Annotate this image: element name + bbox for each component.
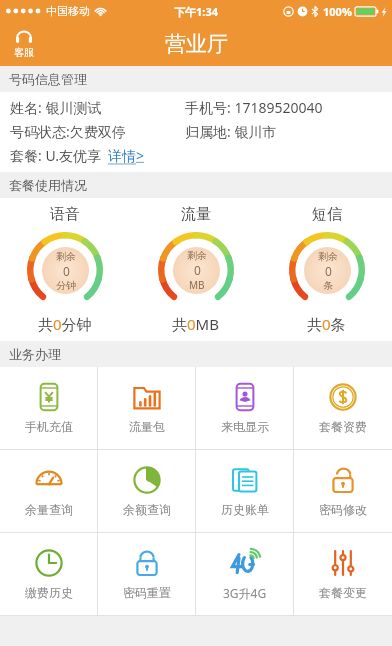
staticText: 详情> — [108, 146, 145, 165]
staticText: 短信 — [312, 205, 342, 224]
staticText: 客服 — [14, 46, 34, 59]
staticText: 套餐资费 — [319, 419, 367, 434]
staticText: 0 — [63, 263, 70, 279]
staticText: 归属地: 银川市 — [185, 122, 277, 141]
staticText: 条 — [323, 279, 333, 292]
staticText: 剩余 — [318, 250, 338, 263]
staticText: 号码信息管理 — [9, 71, 87, 87]
button[interactable]: 客服 — [10, 28, 38, 61]
staticText: 语音 — [50, 205, 80, 224]
staticText: 流量包 — [129, 419, 165, 434]
staticText: 业务办理 — [9, 346, 61, 362]
button[interactable]: 手机充值 — [0, 367, 98, 449]
staticText: 共0分钟 — [38, 314, 92, 334]
staticText: 100% — [323, 4, 352, 19]
staticText: 余量查询 — [25, 502, 73, 517]
staticText: 手机充值 — [25, 419, 73, 434]
staticText: 密码修改 — [319, 502, 367, 517]
staticText: 姓名: 银川测试 — [10, 98, 185, 117]
staticText: 缴费历史 — [25, 585, 73, 600]
button[interactable]: 历史账单 — [196, 450, 294, 532]
staticText: 0 — [194, 262, 201, 278]
staticText: 剩余 — [56, 250, 76, 263]
staticText: 共0MB — [172, 314, 219, 334]
button[interactable]: 余额查询 — [98, 450, 196, 532]
staticText: 余额查询 — [123, 502, 171, 517]
staticText: 来电显示 — [221, 419, 269, 434]
staticText: MB — [189, 278, 205, 292]
staticText: 手机号: 17189520040 — [185, 98, 323, 117]
button[interactable]: 详情> — [108, 146, 145, 165]
button[interactable]: 3G升4G — [196, 533, 294, 615]
staticText: 分钟 — [56, 279, 76, 292]
button[interactable]: 套餐变更 — [294, 533, 392, 615]
button[interactable]: 来电显示 — [196, 367, 294, 449]
staticText: 流量 — [181, 205, 211, 224]
staticText: 共0条 — [307, 314, 346, 334]
staticText: 历史账单 — [221, 502, 269, 517]
button[interactable]: 流量包 — [98, 367, 196, 449]
staticText: 3G升4G — [223, 585, 267, 601]
staticText: 下午1:34 — [174, 4, 218, 19]
staticText: 密码重置 — [123, 585, 171, 600]
button[interactable]: 密码修改 — [294, 450, 392, 532]
button[interactable]: 套餐资费 — [294, 367, 392, 449]
staticText: 套餐变更 — [319, 585, 367, 600]
staticText: 号码状态:欠费双停 — [10, 122, 185, 141]
button[interactable]: 缴费历史 — [0, 533, 98, 615]
staticText: 营业厅 — [165, 31, 228, 57]
button[interactable]: 密码重置 — [98, 533, 196, 615]
staticText: 中国移动 — [46, 4, 90, 18]
staticText: 套餐: U.友优享 — [10, 146, 102, 165]
staticText: 剩余 — [187, 249, 207, 262]
staticText: 套餐使用情况 — [9, 177, 87, 193]
staticText: 0 — [325, 263, 332, 279]
button[interactable]: 余量查询 — [0, 450, 98, 532]
